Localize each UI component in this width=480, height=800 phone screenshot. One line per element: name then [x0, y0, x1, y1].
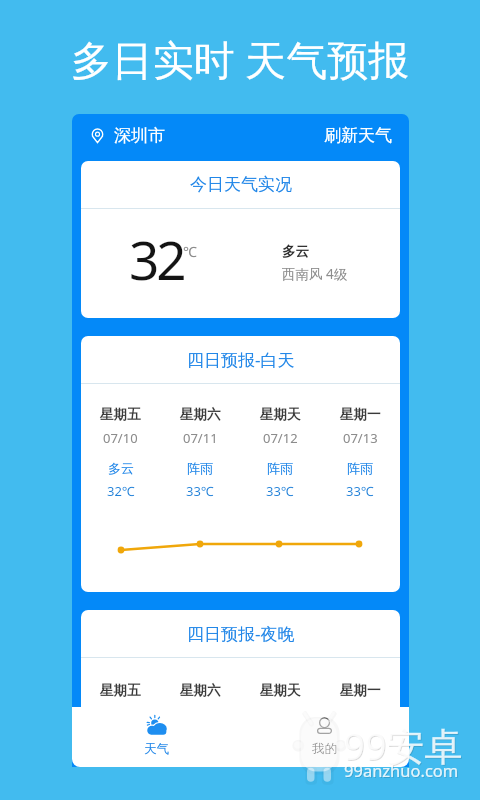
- staticText: 星期五: [100, 406, 141, 423]
- staticText: 今日天气实况: [190, 174, 292, 195]
- button[interactable]: 天气: [72, 707, 240, 767]
- button[interactable]: 刷新天气: [324, 125, 392, 146]
- staticText: 星期一: [340, 682, 381, 699]
- button[interactable]: 我的: [240, 707, 409, 767]
- staticText: 99安卓: [343, 719, 463, 771]
- staticText: 阵雨: [187, 460, 213, 476]
- staticText: ℃: [183, 242, 197, 261]
- staticText: 多云: [282, 243, 309, 260]
- staticText: 星期五: [100, 682, 141, 699]
- staticText: 天气: [144, 741, 169, 757]
- staticText: 07/13: [343, 429, 378, 447]
- staticText: 32: [129, 223, 184, 295]
- staticText: 多云: [108, 460, 134, 476]
- staticText: 四日预报-白天: [187, 348, 295, 371]
- staticText: 07/11: [183, 429, 218, 447]
- staticText: 阵雨: [347, 460, 373, 476]
- staticText: 99安卓: [344, 720, 464, 772]
- staticText: 星期天: [260, 682, 301, 699]
- staticText: 99anzhuo.com: [344, 759, 459, 781]
- staticText: 32℃: [107, 482, 135, 500]
- staticText: 星期六: [180, 682, 221, 699]
- staticText: 刷新天气: [324, 125, 392, 146]
- staticText: 我的: [312, 741, 337, 757]
- button[interactable]: 深圳市: [91, 125, 165, 146]
- staticText: 星期天: [260, 406, 301, 423]
- staticText: 33℃: [186, 482, 214, 500]
- staticText: 深圳市: [114, 125, 165, 146]
- staticText: 99anzhuo.com: [345, 760, 460, 782]
- staticText: 33℃: [266, 482, 294, 500]
- staticText: 阵雨: [267, 460, 293, 476]
- staticText: 星期一: [340, 406, 381, 423]
- staticText: 星期六: [180, 406, 221, 423]
- staticText: 西南风 4级: [282, 265, 348, 283]
- staticText: 33℃: [346, 482, 374, 500]
- staticText: 07/10: [103, 429, 138, 447]
- staticText: 07/12: [263, 429, 298, 447]
- staticText: 多日实时 天气预报: [0, 31, 480, 87]
- staticText: 四日预报-夜晚: [187, 622, 295, 645]
